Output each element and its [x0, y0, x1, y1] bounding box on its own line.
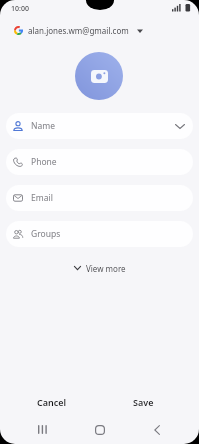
staticText: Groups [31, 228, 61, 240]
button[interactable]: Save [115, 392, 171, 412]
staticText: View more [86, 263, 126, 274]
staticText: Cancel [37, 396, 67, 408]
button[interactable]: Phone [6, 149, 193, 175]
button[interactable] [75, 52, 123, 100]
button[interactable]: alan.jones.wm@gmail.com [14, 23, 143, 38]
button[interactable]: Groups [6, 221, 193, 247]
button[interactable] [88, 420, 112, 439]
button[interactable]: View more [0, 260, 199, 276]
staticText: Name [31, 120, 55, 132]
button[interactable]: Name [6, 113, 193, 139]
staticText: 10:00 [11, 4, 29, 14]
staticText: Save [133, 396, 154, 408]
button[interactable] [30, 420, 54, 439]
button[interactable]: Cancel [24, 392, 80, 412]
staticText: Email [31, 192, 53, 204]
button[interactable]: Email [6, 185, 193, 211]
staticText: alan.jones.wm@gmail.com [28, 25, 129, 36]
button[interactable] [145, 420, 169, 439]
staticText: Phone [31, 156, 57, 168]
